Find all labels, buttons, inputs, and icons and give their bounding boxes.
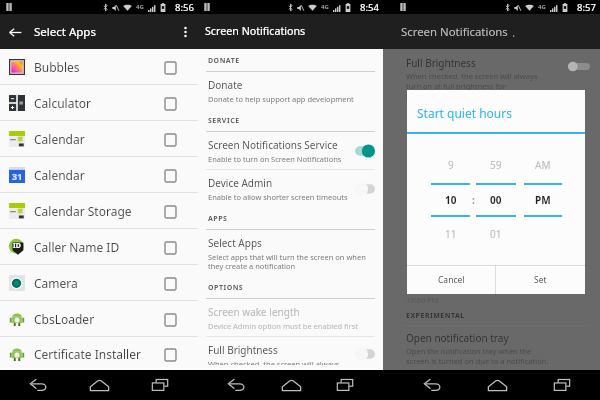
button[interactable]: Recents bbox=[331, 374, 359, 396]
staticText: Select Apps bbox=[208, 236, 262, 250]
button[interactable]: More options bbox=[172, 19, 198, 45]
button[interactable]: Bubbles bbox=[0, 49, 198, 84]
staticText: . bbox=[512, 24, 516, 40]
button[interactable]: Full Brightness bbox=[198, 337, 383, 370]
staticText: 10:00 PM bbox=[406, 295, 439, 305]
staticText: : bbox=[472, 193, 475, 207]
staticText: 31 bbox=[12, 170, 23, 182]
button[interactable]: Recents bbox=[548, 374, 576, 396]
button[interactable]: Home bbox=[277, 374, 305, 396]
button[interactable]: Back bbox=[24, 374, 52, 396]
staticText: Calendar bbox=[34, 131, 85, 147]
staticText: 4G bbox=[538, 3, 546, 11]
button[interactable]: Back bbox=[222, 374, 250, 396]
button[interactable]: Calendar Storage bbox=[0, 193, 198, 228]
button[interactable]: Screen Notifications Service bbox=[198, 132, 383, 169]
staticText: Full Brightness bbox=[406, 56, 476, 70]
button[interactable]: Toggle full brightness bbox=[568, 61, 590, 72]
staticText: DONATE bbox=[208, 56, 240, 66]
staticText: Open notification tray bbox=[406, 331, 509, 345]
staticText: 4G bbox=[321, 3, 329, 11]
button[interactable]: Calculator bbox=[0, 85, 198, 120]
staticText: Calendar Storage bbox=[34, 203, 132, 219]
staticText: Caller Name ID bbox=[34, 239, 120, 255]
button[interactable]: CbsLoader bbox=[0, 301, 198, 336]
button[interactable]: Screen wake length bbox=[198, 299, 383, 336]
staticText: Certificate Installer bbox=[34, 346, 141, 362]
button[interactable]: Set bbox=[496, 266, 585, 294]
staticText: Bubbles bbox=[34, 59, 80, 75]
button[interactable]: ID bbox=[0, 229, 198, 264]
button[interactable]: Toggle bbox=[355, 144, 375, 158]
staticText: ID bbox=[13, 241, 21, 251]
staticText: 59 bbox=[490, 158, 502, 172]
staticText: Screen Notifications bbox=[401, 24, 508, 40]
button[interactable]: Open notification tray bbox=[394, 326, 600, 370]
staticText: Calculator bbox=[34, 95, 91, 111]
staticText: 01 bbox=[490, 227, 502, 241]
staticText: When checked, the screen will always tur… bbox=[406, 71, 538, 101]
staticText: 8:56 bbox=[175, 1, 194, 14]
staticText: Screen Notifications Service bbox=[208, 138, 338, 152]
button[interactable]: Certificate Installer bbox=[0, 337, 198, 370]
staticText: Calendar bbox=[34, 167, 85, 183]
staticText: AM bbox=[535, 158, 551, 172]
staticText: 4G bbox=[136, 3, 144, 11]
staticText: CbsLoader bbox=[34, 311, 95, 327]
staticText: SERVICE bbox=[208, 116, 240, 126]
staticText: 9 bbox=[448, 158, 454, 172]
button[interactable]: Device Admin bbox=[198, 170, 383, 207]
button[interactable]: Recents bbox=[146, 374, 174, 396]
staticText: Device Admin bbox=[208, 176, 273, 190]
button[interactable]: Toggle bbox=[355, 182, 375, 196]
button[interactable]: Donate bbox=[198, 72, 383, 109]
staticText: OPTIONS bbox=[208, 283, 244, 293]
staticText: Screen Notifications bbox=[205, 24, 306, 39]
staticText: Donate to help support app development bbox=[208, 94, 354, 104]
staticText: Set bbox=[534, 274, 547, 286]
button[interactable]: Home bbox=[85, 374, 113, 396]
staticText: Full Brightness bbox=[208, 343, 278, 357]
button[interactable]: Select Apps bbox=[198, 230, 383, 276]
button[interactable]: Cancel bbox=[407, 266, 495, 294]
staticText: PM bbox=[535, 193, 551, 207]
staticText: 11 bbox=[445, 227, 457, 241]
staticText: Select Apps bbox=[34, 24, 96, 40]
button[interactable]: Toggle bbox=[355, 347, 375, 361]
staticText: 10 bbox=[445, 193, 457, 207]
staticText: Open the notification tray when the scre… bbox=[406, 346, 549, 365]
staticText: Cancel bbox=[438, 274, 465, 286]
staticText: 8:57 bbox=[577, 1, 596, 14]
staticText: APPS bbox=[208, 214, 228, 224]
staticText: Enable to turn on Screen Notifications bbox=[208, 154, 342, 164]
staticText: Enable to allow shorter screen timeouts bbox=[208, 192, 348, 202]
button[interactable]: Home bbox=[483, 374, 511, 396]
staticText: Camera bbox=[34, 275, 78, 291]
staticText: Donate bbox=[208, 78, 243, 92]
staticText: Screen wake length bbox=[208, 305, 300, 319]
button[interactable]: Calendar bbox=[0, 121, 198, 156]
button[interactable]: Camera bbox=[0, 265, 198, 300]
staticText: 00 bbox=[490, 193, 502, 207]
button[interactable]: Full Brightness bbox=[394, 51, 600, 106]
button[interactable]: 31 bbox=[0, 157, 198, 192]
staticText: Device Admin option must be enabled firs… bbox=[208, 321, 358, 331]
staticText: When checked, the screen will always tur… bbox=[208, 359, 340, 365]
staticText: Select apps that will turn the screen on… bbox=[208, 252, 366, 271]
staticText: EXPERIMENTAL bbox=[406, 311, 465, 321]
staticText: Start quiet hours bbox=[417, 105, 512, 121]
button[interactable]: Back bbox=[418, 374, 446, 396]
button[interactable]: Navigate up bbox=[0, 17, 30, 47]
staticText: 8:54 bbox=[360, 1, 379, 14]
